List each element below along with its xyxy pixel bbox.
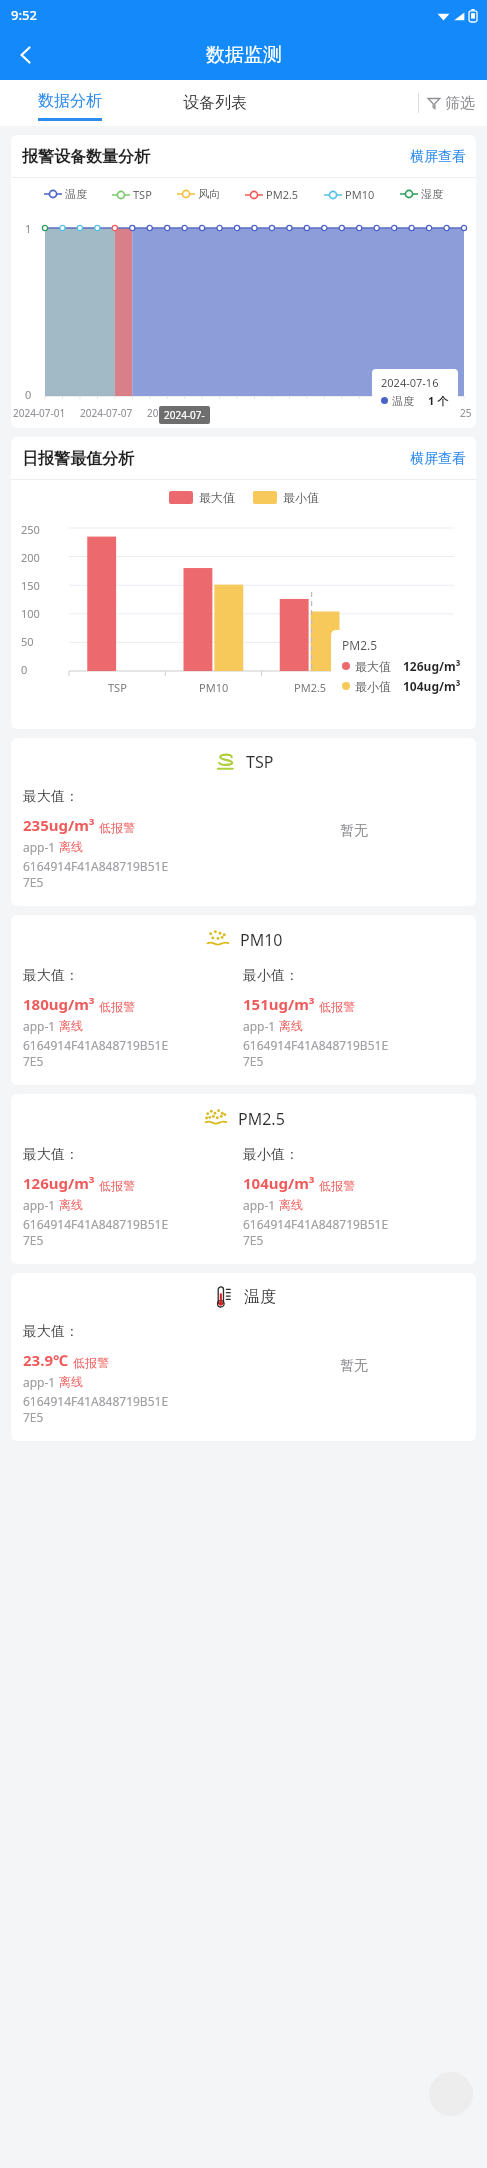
staticText: 6164914F41A848719B51E [23, 1216, 169, 1232]
staticText: 6164914F41A848719B51E [23, 858, 169, 874]
staticText: 温度 [65, 187, 87, 201]
staticText: 2024-07-07 [80, 406, 133, 420]
staticText: 最大值： [23, 1146, 79, 1164]
staticText: 离线 [279, 1018, 303, 1033]
button[interactable]: PM10 [11, 915, 476, 1085]
button[interactable]: 筛选 [418, 80, 475, 126]
staticText: 1 个 [428, 393, 449, 408]
staticText: PM2.5 [294, 680, 327, 695]
staticText: 湿度 [421, 187, 443, 201]
button[interactable]: 横屏查看 [410, 148, 466, 166]
staticText: 180ug/m³ [23, 994, 95, 1014]
staticText: 7E5 [243, 1053, 264, 1069]
staticText: PM10 [240, 929, 283, 951]
staticText: 100 [21, 606, 47, 621]
staticText: 126ug/m³ [403, 658, 461, 674]
staticText: 最小值 [355, 679, 391, 694]
staticText: 235ug/m³ [23, 815, 95, 835]
staticText: TSP [133, 187, 152, 202]
staticText: 低报警 [99, 1178, 135, 1193]
staticText: 最大值 [355, 659, 391, 674]
staticText: 风向 [198, 187, 220, 201]
staticText: app-1 [243, 1018, 279, 1034]
staticText: 最小值 [283, 490, 319, 505]
staticText: 最大值： [23, 788, 79, 806]
staticText: 低报警 [319, 999, 355, 1014]
staticText: 150 [21, 578, 47, 593]
staticText: 温度 [244, 1287, 276, 1307]
staticText: 7E5 [23, 874, 44, 890]
staticText: app-1 [23, 1197, 59, 1213]
button[interactable]: 温度 [11, 1273, 476, 1441]
staticText: PM2.5 [238, 1108, 285, 1130]
staticText: 126ug/m³ [23, 1173, 95, 1193]
staticText: 离线 [59, 1197, 83, 1212]
staticText: 0 [25, 387, 32, 402]
staticText: 9:52 [11, 6, 37, 24]
staticText: 数据监测 [206, 43, 282, 67]
staticText: 2024-07-16 [381, 375, 439, 390]
staticText: 温度 [395, 680, 417, 694]
staticText: 离线 [59, 1018, 83, 1033]
staticText: 6164914F41A848719B51E [23, 1037, 169, 1053]
staticText: 最小值： [243, 1146, 299, 1164]
staticText: 最大值： [23, 1323, 79, 1341]
staticText: 低报警 [319, 1178, 355, 1193]
button[interactable]: TSP [11, 738, 476, 906]
staticText: 温度 [392, 394, 414, 408]
staticText: 低报警 [73, 1355, 109, 1370]
staticText: 50 [21, 634, 47, 649]
button[interactable]: More actions [429, 2072, 473, 2116]
staticText: 7E5 [23, 1232, 44, 1248]
staticText: 最大值 [199, 490, 235, 505]
staticText: app-1 [243, 1197, 279, 1213]
staticText: 250 [21, 522, 47, 537]
staticText: app-1 [23, 1374, 59, 1390]
staticText: 筛选 [445, 94, 475, 113]
button[interactable]: 横屏查看 [410, 450, 466, 468]
staticText: 2024-07-01 [13, 406, 66, 420]
staticText: 2024- [147, 406, 174, 420]
staticText: 7E5 [23, 1053, 44, 1069]
staticText: 6164914F41A848719B51E [243, 1037, 389, 1053]
staticText: TSP [246, 751, 274, 773]
staticText: 暂无 [340, 822, 368, 840]
staticText: PM10 [199, 680, 229, 695]
button[interactable]: 数据分析 [0, 80, 140, 126]
staticText: app-1 [23, 839, 59, 855]
staticText: 低报警 [99, 999, 135, 1014]
staticText: 6164914F41A848719B51E [23, 1393, 169, 1409]
staticText: 104ug/m³ [243, 1173, 315, 1193]
staticText: 最大值： [23, 967, 79, 985]
staticText: 23.9℃ [23, 1350, 69, 1370]
staticText: 最小值： [243, 967, 299, 985]
staticText: 2024-07- [164, 408, 205, 422]
staticText: 暂无 [340, 1357, 368, 1375]
button[interactable]: Back [4, 33, 48, 77]
staticText: TSP [108, 680, 127, 695]
staticText: 离线 [59, 839, 83, 854]
staticText: 25 [460, 406, 472, 420]
staticText: 离线 [59, 1374, 83, 1389]
staticText: PM2.5 [342, 637, 378, 653]
staticText: 7E5 [243, 1232, 264, 1248]
staticText: 151ug/m³ [243, 994, 315, 1014]
staticText: 横屏查看 [410, 450, 466, 468]
staticText: 离线 [279, 1197, 303, 1212]
staticText: 报警设备数量分析 [22, 147, 150, 167]
staticText: 7E5 [23, 1409, 44, 1425]
button[interactable]: PM2.5 [11, 1094, 476, 1264]
staticText: 0 [21, 662, 47, 677]
staticText: 数据分析 [38, 91, 102, 111]
staticText: 低报警 [99, 820, 135, 835]
staticText: PM10 [345, 187, 375, 202]
staticText: PM2.5 [266, 187, 299, 202]
button[interactable]: 设备列表 [140, 80, 290, 126]
staticText: 200 [21, 550, 47, 565]
staticText: 1 [25, 221, 32, 236]
staticText: 6164914F41A848719B51E [243, 1216, 389, 1232]
staticText: 设备列表 [183, 93, 247, 113]
staticText: 104ug/m³ [403, 678, 461, 694]
staticText: 横屏查看 [410, 148, 466, 166]
staticText: app-1 [23, 1018, 59, 1034]
